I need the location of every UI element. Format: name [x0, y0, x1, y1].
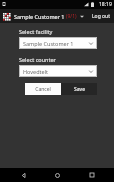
button[interactable]: Hovedtelt: [19, 65, 97, 77]
staticText: Sample Customer 1: [14, 13, 65, 20]
button[interactable]: Sample Customer 1: [14, 13, 90, 20]
staticText: Sample Customer 1: [23, 40, 89, 47]
button[interactable]: Sample Customer 1: [19, 37, 97, 49]
button[interactable]: Recent apps: [80, 168, 104, 182]
staticText: Cancel: [35, 86, 51, 93]
staticText: Save: [74, 86, 85, 93]
staticText: Log out: [92, 13, 110, 20]
button[interactable]: Cancel: [25, 83, 61, 95]
staticText: Select counter: [19, 56, 56, 63]
button[interactable]: Save: [61, 83, 97, 95]
staticText: (9/1): [66, 13, 77, 20]
button[interactable]: Back: [11, 168, 35, 182]
button[interactable]: App logo: [2, 12, 11, 21]
staticText: Select facility: [19, 28, 53, 35]
staticText: Hovedtelt: [23, 68, 89, 75]
button[interactable]: Log out: [90, 11, 112, 22]
button[interactable]: Home: [45, 168, 69, 182]
staticText: 18:19: [99, 1, 112, 8]
